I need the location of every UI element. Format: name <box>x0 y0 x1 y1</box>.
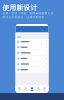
button[interactable]: Setting <box>15 61 48 67</box>
staticText: 使用新设计 <box>2 4 37 12</box>
button[interactable]: Tab <box>35 87 41 91</box>
button[interactable]: Setting <box>15 39 48 44</box>
button[interactable]: Setting <box>15 67 48 72</box>
button[interactable]: Selected tab <box>29 87 35 91</box>
button[interactable]: Tab <box>16 87 23 91</box>
staticText: 简洁上手的设计，让操作更轻松 <box>2 16 44 19</box>
button[interactable]: Setting <box>15 45 48 50</box>
button[interactable]: Setting <box>15 50 48 55</box>
button[interactable]: Tab <box>41 87 48 91</box>
button[interactable]: Tab <box>23 87 29 91</box>
button[interactable]: Setting <box>15 56 48 61</box>
staticText: 全新 · 设计 · 体验 · 更简单的使用方式 <box>2 11 53 15</box>
